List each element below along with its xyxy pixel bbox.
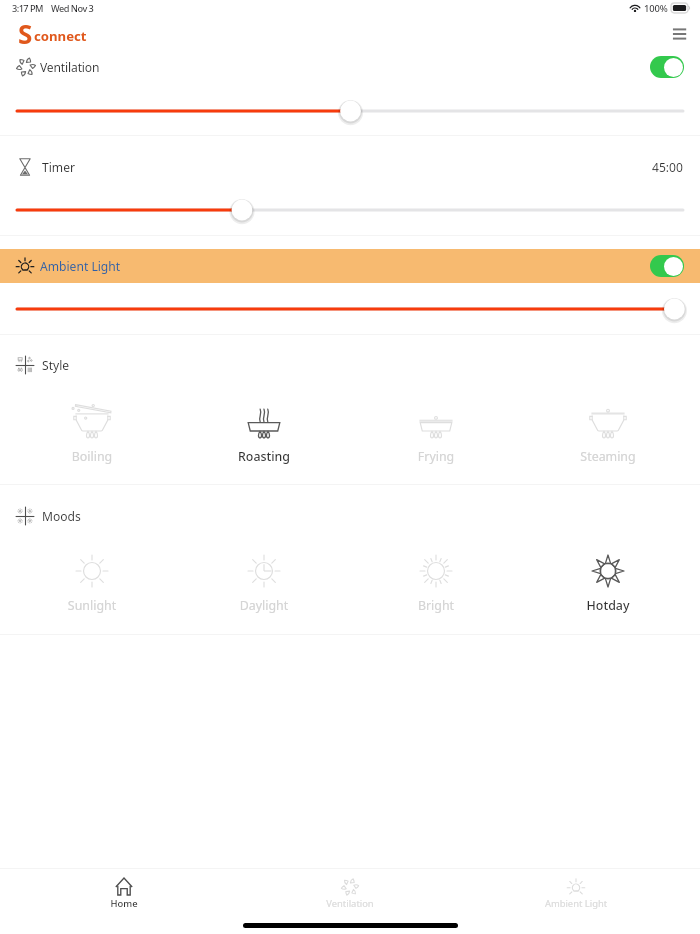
staticText: Hotday [522, 597, 694, 614]
staticText: Ventilation [40, 59, 100, 75]
staticText: 45:00 [652, 159, 683, 175]
button[interactable]: Ventilation [237, 872, 463, 916]
button[interactable]: Toggle on [650, 255, 684, 277]
button[interactable]: Hotday [522, 555, 694, 617]
button[interactable]: Level slider [0, 97, 700, 125]
staticText: 100% [644, 2, 668, 15]
button[interactable]: Toggle on [650, 56, 684, 78]
button[interactable]: Bright [350, 555, 522, 617]
staticText: Wed Nov 3 [51, 2, 94, 15]
staticText: Roasting [178, 448, 350, 465]
staticText: Frying [350, 448, 522, 465]
staticText: Daylight [178, 597, 350, 614]
staticText: Moods [42, 508, 81, 524]
button[interactable]: Steaming [522, 403, 694, 468]
button[interactable]: Frying [350, 403, 522, 468]
button[interactable]: Roasting [178, 403, 350, 468]
staticText: Home [11, 897, 237, 910]
staticText: Ambient Light [40, 258, 121, 274]
staticText: Steaming [522, 448, 694, 465]
button[interactable]: Sunlight [6, 555, 178, 617]
staticText: 3:17 PM [12, 2, 43, 15]
staticText: connect [34, 27, 87, 45]
staticText: Ventilation [237, 897, 463, 910]
staticText: Boiling [6, 448, 178, 465]
button[interactable]: Ventilation [15, 55, 684, 79]
button[interactable]: Level slider [0, 196, 700, 224]
staticText: Ambient Light [463, 897, 689, 910]
staticText: Sunlight [6, 597, 178, 614]
button[interactable]: Timer [15, 155, 683, 179]
button[interactable]: Ambient Light [463, 872, 689, 916]
staticText: S [18, 16, 33, 48]
button[interactable]: Daylight [178, 555, 350, 617]
button[interactable]: Boiling [6, 403, 178, 468]
button[interactable]: Home [11, 872, 237, 916]
staticText: Style [42, 357, 70, 373]
button[interactable]: S [17, 17, 97, 49]
button[interactable]: Level slider [0, 295, 700, 323]
button[interactable]: Ambient Light [15, 249, 684, 283]
button[interactable]: Menu [668, 21, 694, 47]
staticText: Timer [42, 159, 75, 175]
staticText: Bright [350, 597, 522, 614]
